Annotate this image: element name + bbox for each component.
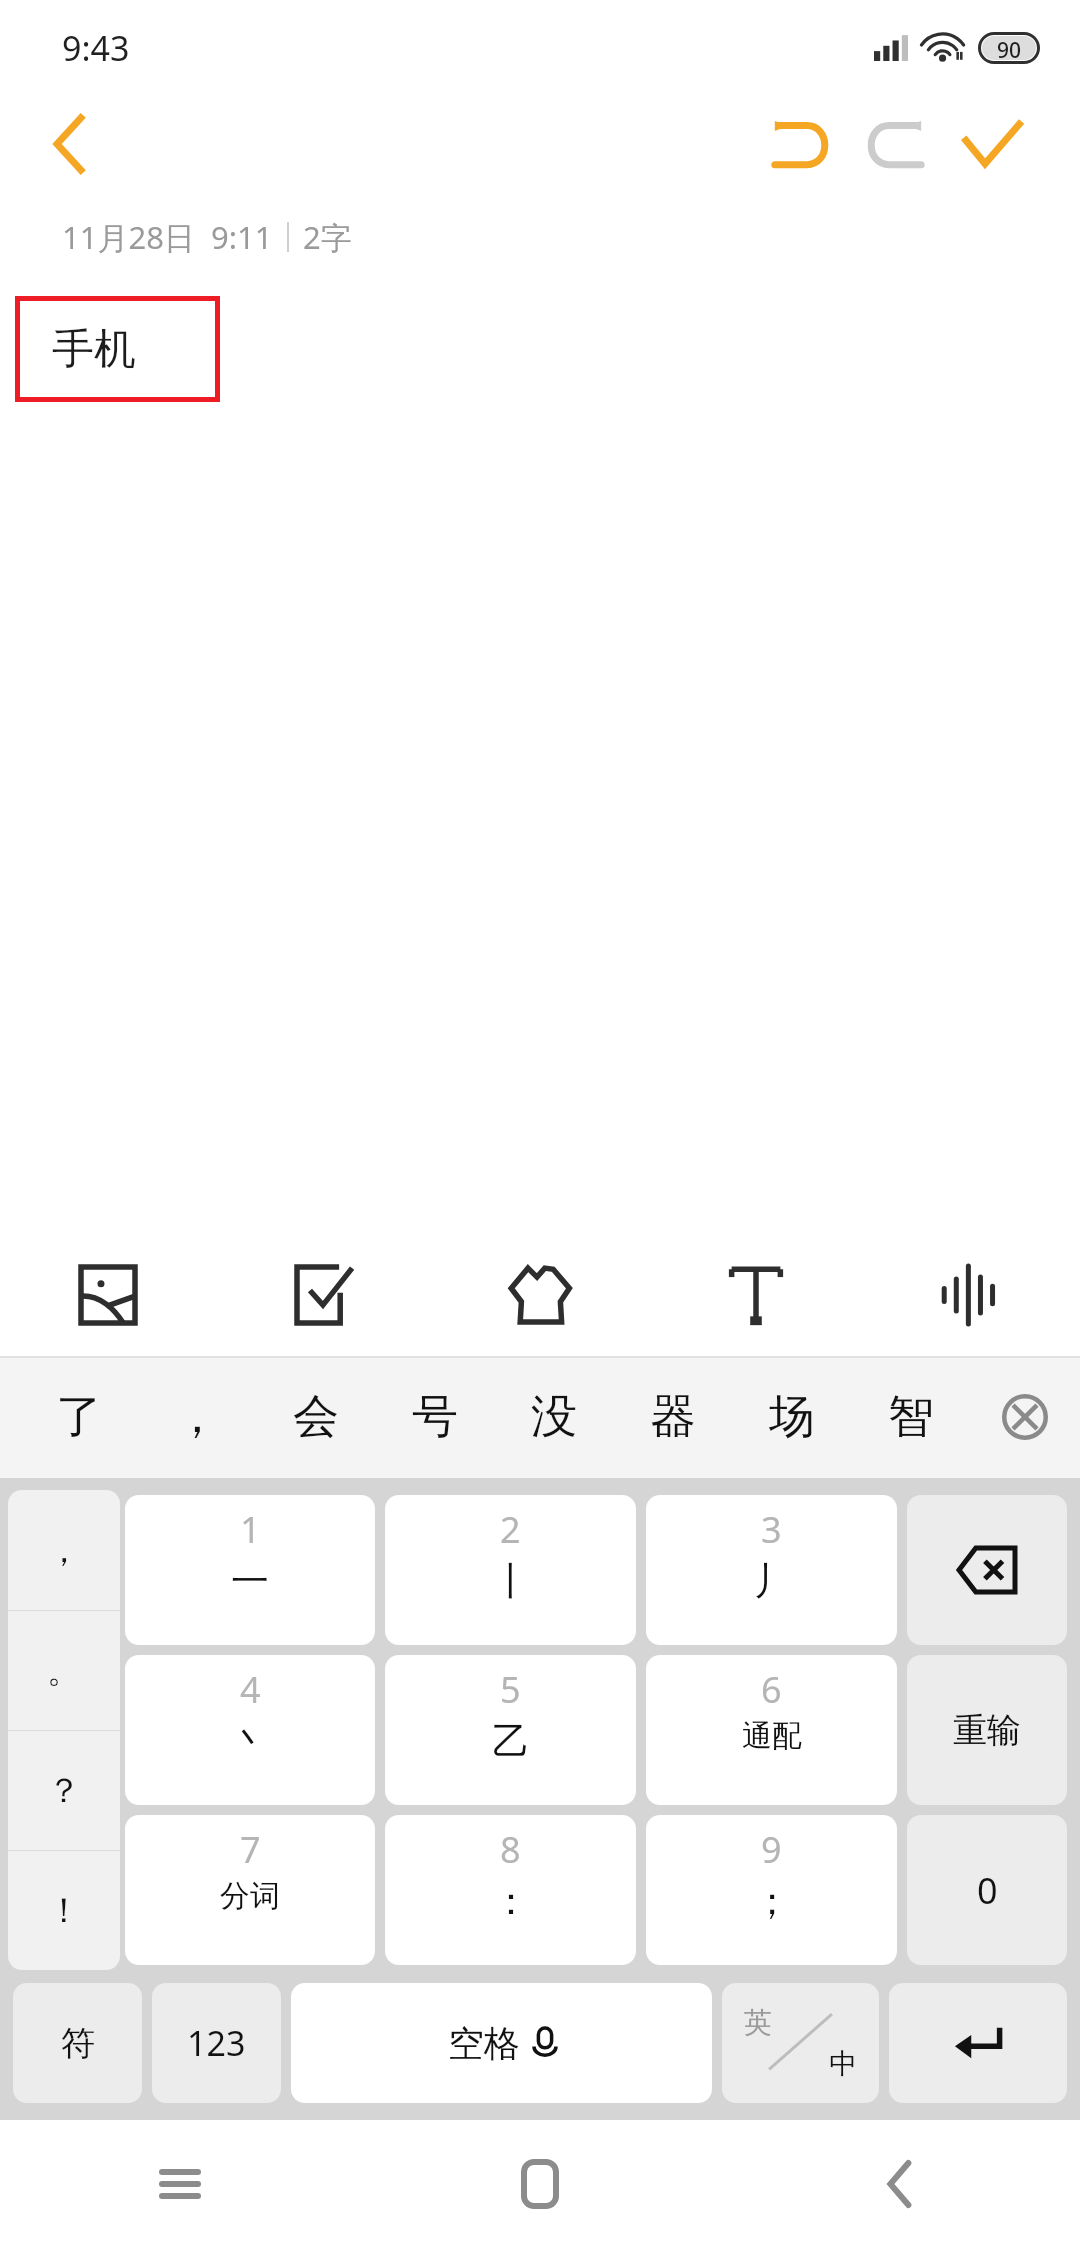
button[interactable]: 号	[375, 1356, 494, 1478]
button[interactable]: 英	[722, 1983, 879, 2103]
button[interactable]: ？	[8, 1731, 120, 1850]
button[interactable]: 空格	[291, 1983, 712, 2103]
staticText: 场	[769, 1388, 815, 1446]
staticText: 空格	[448, 2021, 520, 2066]
button[interactable]: 3	[646, 1495, 897, 1645]
staticText: 0	[977, 1866, 998, 1915]
button[interactable]: Back	[720, 2120, 1080, 2248]
staticText: 9	[761, 1825, 782, 1874]
button[interactable]: Text format	[648, 1234, 864, 1356]
button[interactable]: ，	[8, 1490, 120, 1610]
button[interactable]: 9	[646, 1815, 897, 1965]
button[interactable]: 智	[851, 1356, 970, 1478]
button[interactable]: Checklist	[216, 1234, 432, 1356]
button[interactable]: Redo	[848, 96, 944, 192]
button[interactable]: Backspace	[907, 1495, 1067, 1645]
button[interactable]: 2	[385, 1495, 636, 1645]
staticText: 123	[187, 2020, 246, 2066]
staticText: 90	[997, 36, 1022, 60]
button[interactable]: Back	[30, 104, 110, 184]
button[interactable]: 场	[732, 1356, 851, 1478]
button[interactable]: 。	[8, 1611, 120, 1730]
staticText: 4	[240, 1665, 261, 1714]
staticText: 号	[412, 1388, 458, 1446]
staticText: 英	[744, 2005, 772, 2040]
button[interactable]: Undo	[752, 96, 848, 192]
button[interactable]: 0	[907, 1815, 1067, 1965]
staticText: 3	[761, 1505, 782, 1554]
staticText: 丿	[753, 1557, 791, 1605]
staticText: 器	[650, 1388, 696, 1446]
staticText: ，	[47, 1529, 81, 1572]
button[interactable]: 7	[125, 1815, 375, 1965]
staticText: ！	[47, 1889, 81, 1932]
staticText: 6	[761, 1665, 782, 1714]
button[interactable]: 1	[125, 1495, 375, 1645]
staticText: 乙	[492, 1717, 530, 1765]
staticText: 7	[240, 1825, 261, 1874]
button[interactable]: ，	[138, 1356, 256, 1478]
staticText: 没	[531, 1388, 577, 1446]
staticText: ：	[492, 1877, 530, 1925]
staticText: 会	[293, 1388, 339, 1446]
button[interactable]: Recents	[0, 2120, 360, 2248]
button[interactable]: 重输	[907, 1655, 1067, 1805]
button[interactable]: Done	[944, 96, 1040, 192]
staticText: ？	[47, 1769, 81, 1812]
staticText: 重输	[953, 1709, 1021, 1752]
staticText: 11月28日 9:11	[62, 216, 273, 258]
staticText: 9:43	[62, 25, 130, 71]
staticText: 通配	[742, 1717, 802, 1755]
staticText: 5	[500, 1665, 521, 1714]
button[interactable]: Enter	[889, 1983, 1067, 2103]
staticText: 1	[240, 1505, 261, 1554]
staticText: 手机	[52, 323, 136, 376]
staticText: ，	[174, 1388, 220, 1446]
staticText: 中	[829, 2046, 857, 2081]
button[interactable]: 5	[385, 1655, 636, 1805]
button[interactable]: 4	[125, 1655, 375, 1805]
staticText: 8	[500, 1825, 521, 1874]
button[interactable]: 没	[494, 1356, 613, 1478]
staticText: 丶	[231, 1717, 269, 1765]
button[interactable]: ！	[8, 1851, 120, 1970]
staticText: 符	[61, 2022, 95, 2065]
staticText: 一	[231, 1557, 269, 1605]
button[interactable]: 会	[256, 1356, 375, 1478]
button[interactable]: 123	[152, 1983, 281, 2103]
staticText: 智	[888, 1388, 934, 1446]
staticText: 。	[47, 1649, 81, 1692]
button[interactable]: Insert image	[0, 1234, 216, 1356]
button[interactable]: 6	[646, 1655, 897, 1805]
staticText: 2	[500, 1505, 521, 1554]
staticText: ；	[753, 1877, 791, 1925]
staticText: 了	[56, 1388, 102, 1446]
staticText: 丨	[492, 1557, 530, 1605]
staticText: 分词	[220, 1877, 280, 1915]
button[interactable]: Style	[432, 1234, 648, 1356]
staticText: 2字	[303, 216, 352, 258]
button[interactable]: 了	[20, 1356, 138, 1478]
button[interactable]: Home	[360, 2120, 720, 2248]
button[interactable]: 手机	[15, 296, 220, 402]
button[interactable]: 8	[385, 1815, 636, 1965]
button[interactable]: Voice	[864, 1234, 1080, 1356]
button[interactable]: 符	[13, 1983, 142, 2103]
button[interactable]: Close candidates	[970, 1356, 1080, 1478]
button[interactable]: 器	[613, 1356, 732, 1478]
